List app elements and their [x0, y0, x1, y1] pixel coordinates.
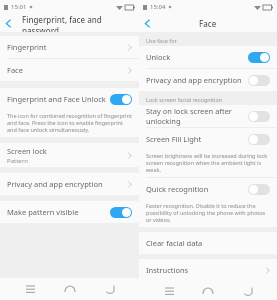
- button[interactable]: Off: [248, 184, 270, 195]
- staticText: Stay on lock screen after unlocking: [146, 106, 248, 126]
- staticText: The icon for combined recognition of fin…: [7, 112, 132, 133]
- button[interactable]: On: [110, 207, 132, 218]
- button[interactable]: Recents: [21, 280, 39, 298]
- staticText: 15:04: [150, 3, 166, 11]
- button[interactable]: Screen lock: [0, 143, 139, 167]
- staticText: Screen Fill Light: [146, 134, 202, 144]
- button[interactable]: Stay on lock screen after unlocking: [139, 105, 277, 127]
- staticText: Fingerprint and Face Unlock: [7, 94, 106, 104]
- staticText: Clear facial data: [146, 238, 203, 248]
- button[interactable]: Home: [199, 282, 217, 300]
- button[interactable]: Unlock: [139, 46, 277, 68]
- button[interactable]: Instructions: [139, 259, 277, 281]
- button[interactable]: Home: [61, 280, 79, 298]
- button[interactable]: Screen Fill Light: [139, 128, 277, 150]
- staticText: Face: [7, 65, 23, 75]
- staticText: Make pattern visible: [7, 207, 79, 217]
- button[interactable]: Make pattern visible: [0, 201, 139, 223]
- staticText: Use face for: [146, 37, 177, 44]
- button[interactable]: Back: [100, 280, 118, 298]
- button[interactable]: Privacy and app encryption: [139, 69, 277, 91]
- staticText: Screen lock: [7, 146, 47, 156]
- button[interactable]: Off: [248, 134, 270, 145]
- staticText: Fingerprint, face and password: [22, 14, 139, 32]
- staticText: Unlock: [146, 52, 171, 62]
- staticText: Pattern: [7, 157, 28, 165]
- button[interactable]: Back: [0, 15, 16, 31]
- button[interactable]: Fingerprint: [0, 36, 139, 58]
- staticText: Lock screen facial recognition: [146, 96, 223, 103]
- staticText: Screen brightness will be increased duri…: [146, 152, 270, 173]
- button[interactable]: Off: [248, 75, 270, 86]
- button[interactable]: Fingerprint and Face Unlock: [0, 88, 139, 110]
- button[interactable]: Face: [0, 59, 139, 81]
- staticText: Privacy and app encryption: [7, 179, 103, 189]
- staticText: Instructions: [146, 265, 189, 275]
- staticText: Faster recognition. Disable it to reduce…: [146, 202, 270, 223]
- button[interactable]: Recents: [160, 282, 178, 300]
- staticText: Face: [199, 18, 217, 29]
- button[interactable]: Off: [248, 111, 270, 122]
- button[interactable]: On: [248, 52, 270, 63]
- button[interactable]: On: [110, 94, 132, 105]
- button[interactable]: Back: [238, 282, 256, 300]
- staticText: 15:01: [11, 3, 27, 11]
- button[interactable]: Privacy and app encryption: [0, 173, 139, 195]
- staticText: Fingerprint: [7, 42, 47, 52]
- button[interactable]: Quick recognition: [139, 178, 277, 200]
- staticText: Privacy and app encryption: [146, 75, 242, 85]
- button[interactable]: Clear facial data: [139, 232, 277, 254]
- button[interactable]: Back: [139, 15, 155, 31]
- staticText: Quick recognition: [146, 184, 209, 194]
